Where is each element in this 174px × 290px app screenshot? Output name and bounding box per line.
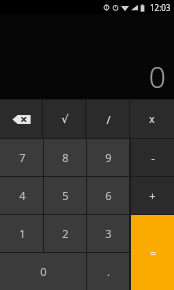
button[interactable]: -	[131, 139, 174, 176]
staticText: √	[61, 113, 69, 126]
staticText: /	[106, 112, 111, 127]
button[interactable]: 8	[44, 139, 87, 176]
staticText: 7	[19, 150, 26, 165]
button[interactable]: 0	[0, 253, 87, 290]
button[interactable]: 6	[87, 177, 130, 214]
button[interactable]: .	[87, 253, 130, 290]
staticText: 3	[105, 226, 112, 241]
button[interactable]: 2	[44, 215, 87, 252]
staticText: 6	[105, 188, 112, 203]
staticText: 5	[62, 188, 69, 203]
button[interactable]: 3	[87, 215, 130, 252]
staticText: 0	[40, 264, 47, 279]
button[interactable]: x	[130, 100, 174, 138]
button[interactable]: +	[131, 177, 174, 214]
button[interactable]: √	[43, 100, 86, 138]
button[interactable]: /	[86, 100, 130, 138]
button[interactable]: 5	[44, 177, 87, 214]
button[interactable]: =	[131, 215, 174, 290]
staticText: 1	[19, 226, 26, 241]
staticText: 12:03	[150, 2, 171, 13]
button[interactable]: 9	[87, 139, 130, 176]
staticText: -	[151, 150, 155, 165]
staticText: 2	[62, 226, 69, 241]
staticText: +	[149, 188, 156, 203]
button[interactable]: 7	[0, 139, 44, 176]
staticText: =	[150, 246, 156, 260]
staticText: 9	[105, 150, 112, 165]
staticText: x	[149, 112, 155, 126]
button[interactable]: 1	[0, 215, 44, 252]
button[interactable]: Backspace	[0, 100, 43, 138]
staticText: .	[107, 264, 110, 279]
staticText: 0	[148, 56, 166, 97]
staticText: 8	[62, 150, 69, 165]
staticText: 4	[19, 188, 26, 203]
button[interactable]: 4	[0, 177, 44, 214]
